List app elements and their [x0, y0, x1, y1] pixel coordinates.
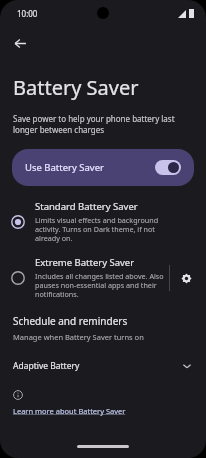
- button[interactable]: Extreme Battery Saver: [0, 256, 206, 300]
- button[interactable]: Adaptive Battery: [0, 356, 206, 376]
- staticText: Adaptive Battery: [13, 360, 181, 372]
- staticText: Battery Saver: [13, 74, 139, 101]
- button[interactable]: Back: [6, 26, 34, 60]
- staticText: Extreme Battery Saver: [35, 256, 135, 269]
- staticText: Use Battery Saver: [25, 161, 155, 174]
- staticText: Standard Battery Saver: [35, 200, 138, 213]
- staticText: Schedule and reminders: [13, 314, 128, 328]
- button[interactable]: Extreme Battery Saver settings: [174, 266, 198, 290]
- staticText: Learn more about Battery Saver: [13, 406, 126, 416]
- button[interactable]: Learn more about Battery Saver: [13, 406, 126, 416]
- staticText: Save power to help your phone battery la…: [13, 113, 190, 135]
- staticText: Includes all changes listed above. Also …: [35, 271, 164, 300]
- staticText: Manage when Battery Saver turns on: [13, 332, 144, 342]
- staticText: 10:00: [17, 8, 38, 19]
- button[interactable]: Standard Battery Saver: [0, 200, 206, 244]
- button[interactable]: Use Battery Saver: [12, 149, 194, 186]
- staticText: Limits visual effects and background act…: [35, 215, 164, 244]
